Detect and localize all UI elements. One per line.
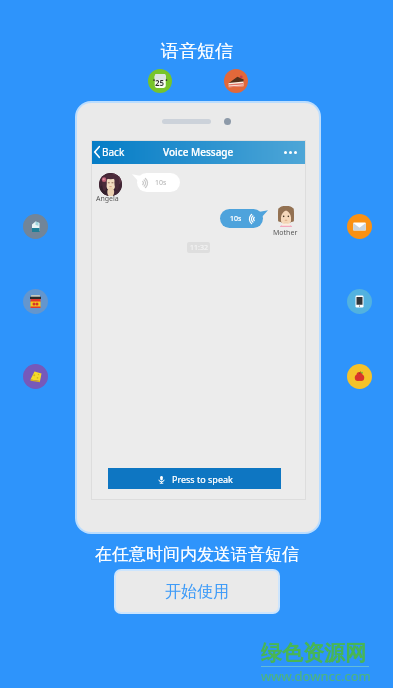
staticText: 在任意时间内发送语音短信 xyxy=(95,544,299,565)
staticText: www.downcc.com xyxy=(261,667,371,685)
button[interactable]: Angela avatar xyxy=(99,173,122,196)
button[interactable]: Cheese xyxy=(23,364,48,389)
button[interactable]: Apple xyxy=(347,364,372,389)
button[interactable]: Cake xyxy=(224,69,248,93)
staticText: Mother xyxy=(273,228,298,238)
staticText: 语音短信 xyxy=(161,40,233,63)
staticText: Press to speak xyxy=(172,473,233,485)
button[interactable]: Milk xyxy=(23,214,48,239)
button[interactable]: Back xyxy=(91,140,306,164)
button[interactable]: Play voice message from Angela, 10 secon… xyxy=(132,173,180,192)
button[interactable]: Calendar xyxy=(148,69,172,93)
staticText: 开始使用 xyxy=(165,582,229,602)
button[interactable]: Phone xyxy=(347,289,372,314)
button[interactable]: 开始使用 xyxy=(116,571,278,612)
button[interactable]: Mail xyxy=(347,214,372,239)
staticText: 10s xyxy=(230,214,242,224)
staticText: Angela xyxy=(96,194,119,204)
staticText: 25 xyxy=(155,77,165,88)
staticText: 绿色资源网 xyxy=(261,640,366,666)
staticText: Back xyxy=(102,145,125,159)
staticText: 11:32 xyxy=(190,243,208,253)
staticText: Voice Message xyxy=(163,145,234,159)
button[interactable]: Press to speak xyxy=(108,468,281,489)
button[interactable]: Mother avatar xyxy=(277,206,295,228)
button[interactable]: Play voice message to Mother, 10 seconds xyxy=(220,209,268,228)
button[interactable]: Jam xyxy=(23,289,48,314)
staticText: 10s xyxy=(155,178,167,188)
